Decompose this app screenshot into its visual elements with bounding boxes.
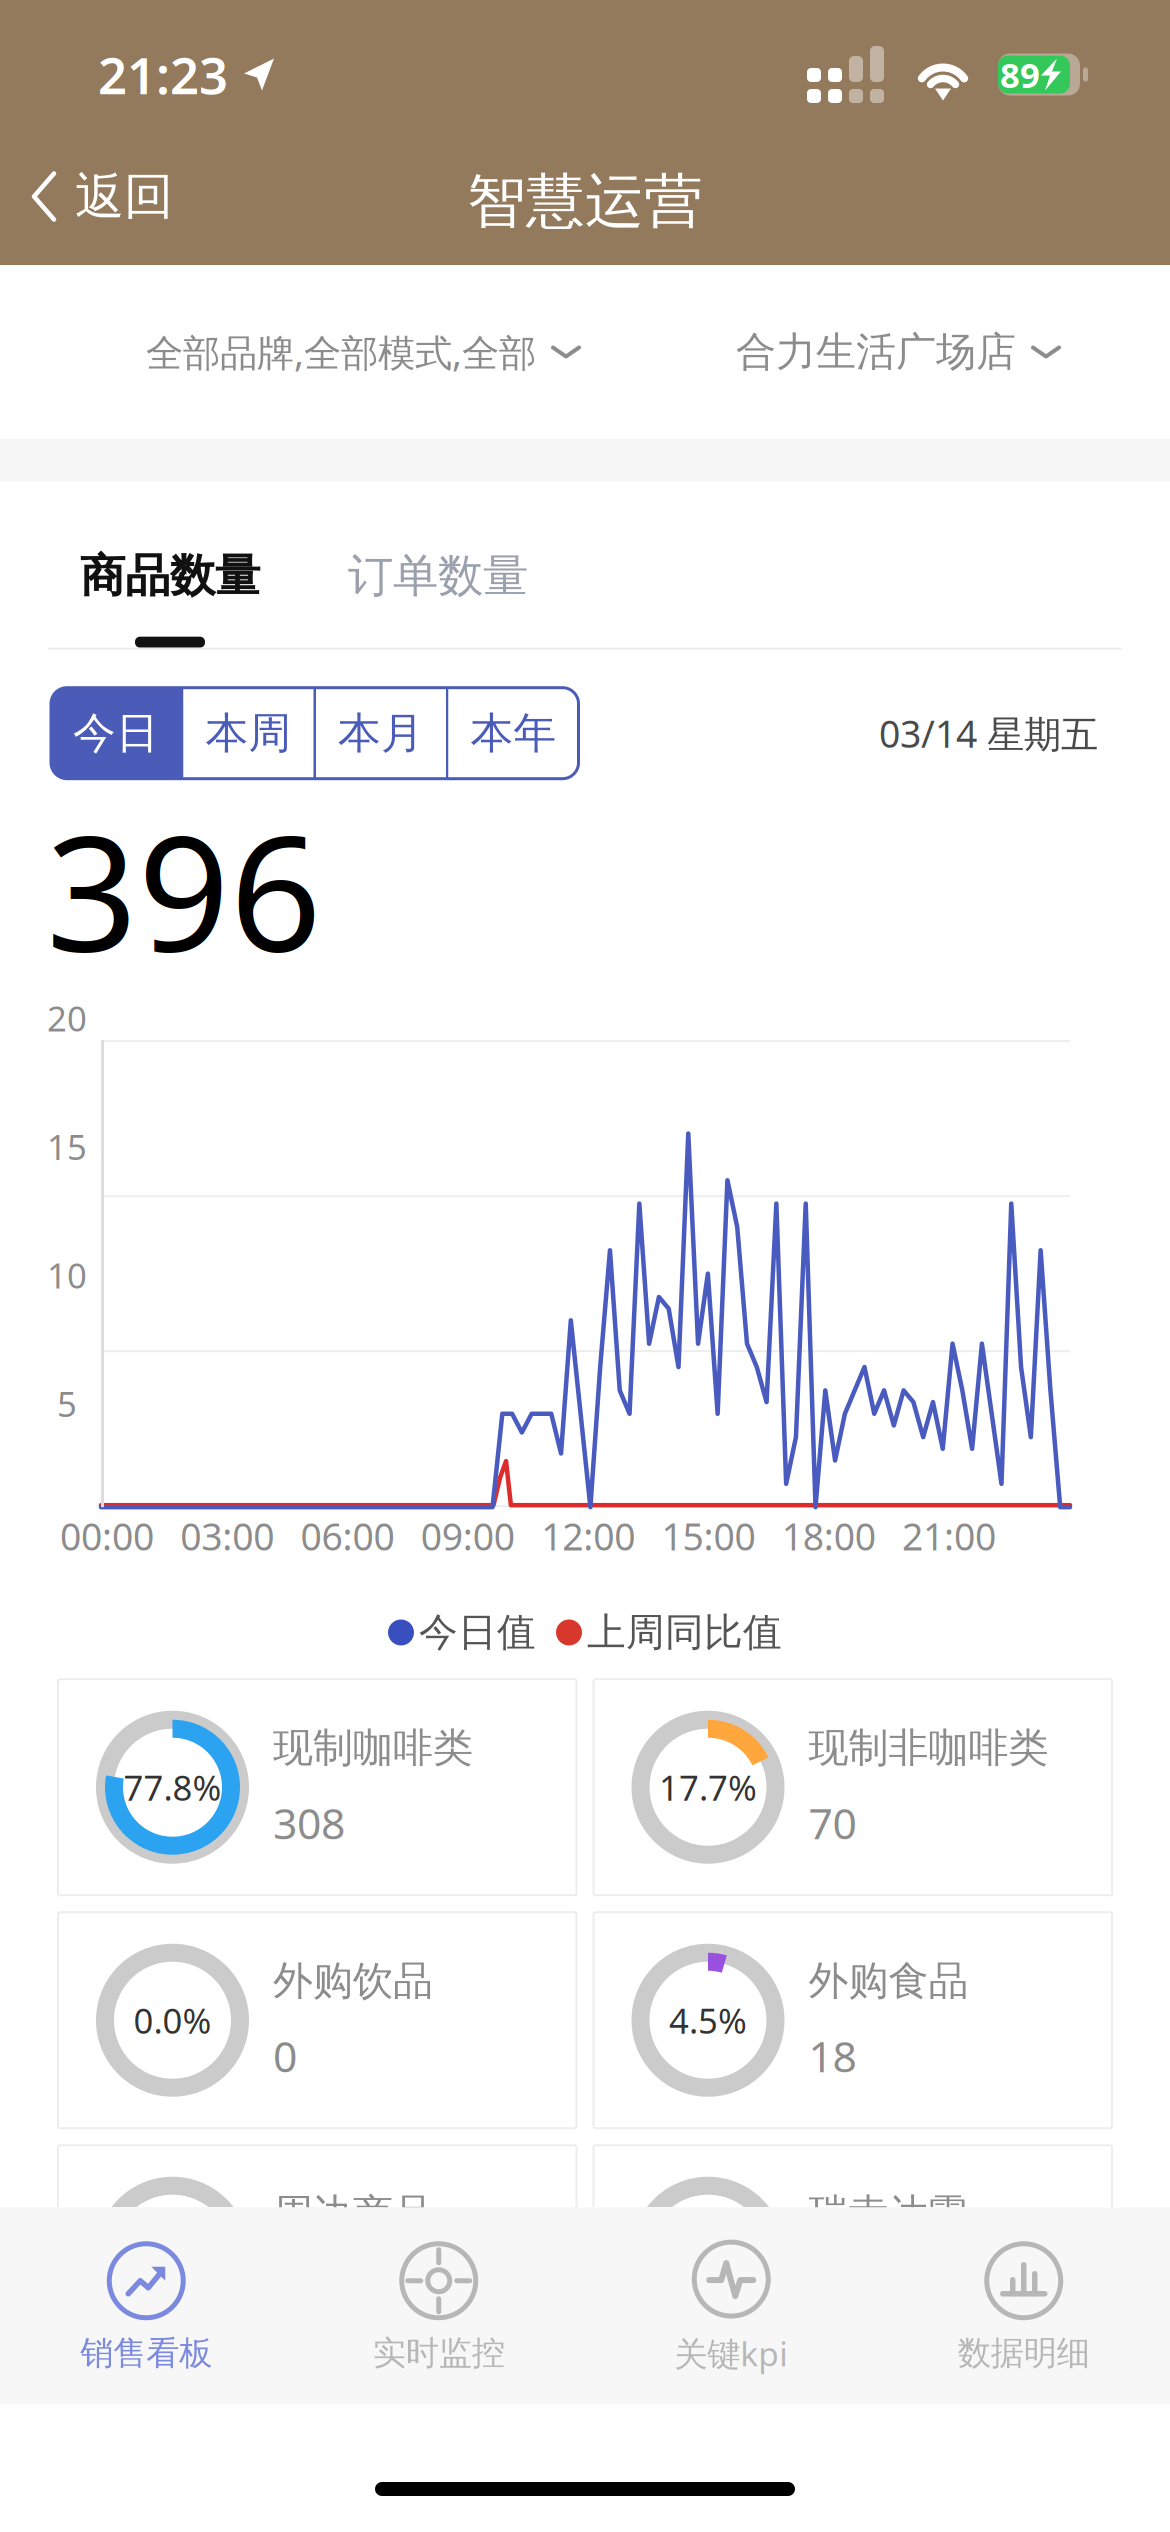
staticText: 5 xyxy=(57,1381,77,1427)
staticText: 20 xyxy=(47,995,87,1041)
button[interactable]: 数据明细 xyxy=(877,2214,1170,2398)
button[interactable]: 77.8% xyxy=(58,1679,576,1895)
staticText: 0.0% xyxy=(133,1997,211,2043)
staticText: 21:00 xyxy=(902,1511,996,1561)
staticText: 本周 xyxy=(205,707,291,759)
button[interactable]: 本周 xyxy=(183,688,313,779)
button[interactable]: 合力生活广场店 xyxy=(736,303,1062,400)
staticText: 现制非咖啡类 xyxy=(808,1723,1048,1772)
button[interactable]: 销售看板 xyxy=(0,2214,292,2398)
staticText: 合力生活广场店 xyxy=(736,327,1016,376)
staticText: 瑞幸达零 xyxy=(808,2189,968,2238)
staticText: 实时监控 xyxy=(373,2333,505,2374)
staticText: 本月 xyxy=(338,707,424,759)
staticText: 12:00 xyxy=(541,1511,635,1561)
button[interactable]: 本年 xyxy=(448,688,578,779)
staticText: 今日值 xyxy=(419,1609,536,1656)
staticText: 15:00 xyxy=(661,1511,755,1561)
staticText: 全部品牌,全部模式,全部 xyxy=(146,327,536,377)
staticText: 18:00 xyxy=(782,1511,876,1561)
staticText: 03/14 星期五 xyxy=(879,708,1098,758)
staticText: 09:00 xyxy=(421,1511,515,1561)
staticText: 周边商品 xyxy=(273,2189,433,2238)
button[interactable]: 全部品牌,全部模式,全部 xyxy=(146,303,582,401)
staticText: 00:00 xyxy=(60,1511,154,1561)
staticText: 商品数量 xyxy=(80,548,260,604)
staticText: 17.7% xyxy=(659,1764,757,1810)
button[interactable]: 商品数量 xyxy=(80,482,260,648)
staticText: 返回 xyxy=(75,166,173,227)
staticText: 10 xyxy=(47,1252,87,1298)
staticText: 06:00 xyxy=(301,1511,395,1561)
staticText: 数据明细 xyxy=(958,2333,1090,2374)
staticText: 89 xyxy=(1000,51,1040,97)
button[interactable] xyxy=(593,2145,1112,2361)
staticText: 订单数量 xyxy=(348,548,528,604)
button[interactable]: 订单数量 xyxy=(260,482,528,648)
button[interactable] xyxy=(58,2145,576,2361)
staticText: 21:23 xyxy=(98,41,228,108)
button[interactable]: 返回 xyxy=(0,148,173,255)
staticText: 0 xyxy=(273,2027,297,2084)
staticText: 上周同比值 xyxy=(587,1609,782,1656)
staticText: 本年 xyxy=(470,707,556,759)
staticText: 关键kpi xyxy=(674,2331,788,2375)
button[interactable]: 本月 xyxy=(316,688,446,779)
staticText: 308 xyxy=(273,1794,345,1851)
staticText: 智慧运营 xyxy=(467,165,703,238)
staticText: 外购食品 xyxy=(808,1956,968,2005)
staticText: 外购饮品 xyxy=(273,1956,433,2005)
button[interactable]: 今日 xyxy=(51,688,181,779)
button[interactable]: 关键kpi xyxy=(585,2212,877,2399)
staticText: 396 xyxy=(46,783,322,995)
staticText: 今日 xyxy=(73,707,159,759)
button[interactable]: 4.5% xyxy=(593,1912,1112,2128)
button[interactable]: 实时监控 xyxy=(292,2214,585,2398)
staticText: 77.8% xyxy=(123,1764,221,1810)
staticText: 4.5% xyxy=(669,1997,747,2043)
staticText: 18 xyxy=(808,2027,856,2084)
staticText: 现制咖啡类 xyxy=(273,1723,473,1772)
staticText: 03:00 xyxy=(180,1511,274,1561)
staticText: 15 xyxy=(47,1124,87,1170)
button[interactable]: 17.7% xyxy=(593,1679,1112,1895)
staticText: 销售看板 xyxy=(80,2333,212,2374)
button[interactable]: 0.0% xyxy=(58,1912,576,2128)
staticText: 70 xyxy=(808,1794,856,1851)
